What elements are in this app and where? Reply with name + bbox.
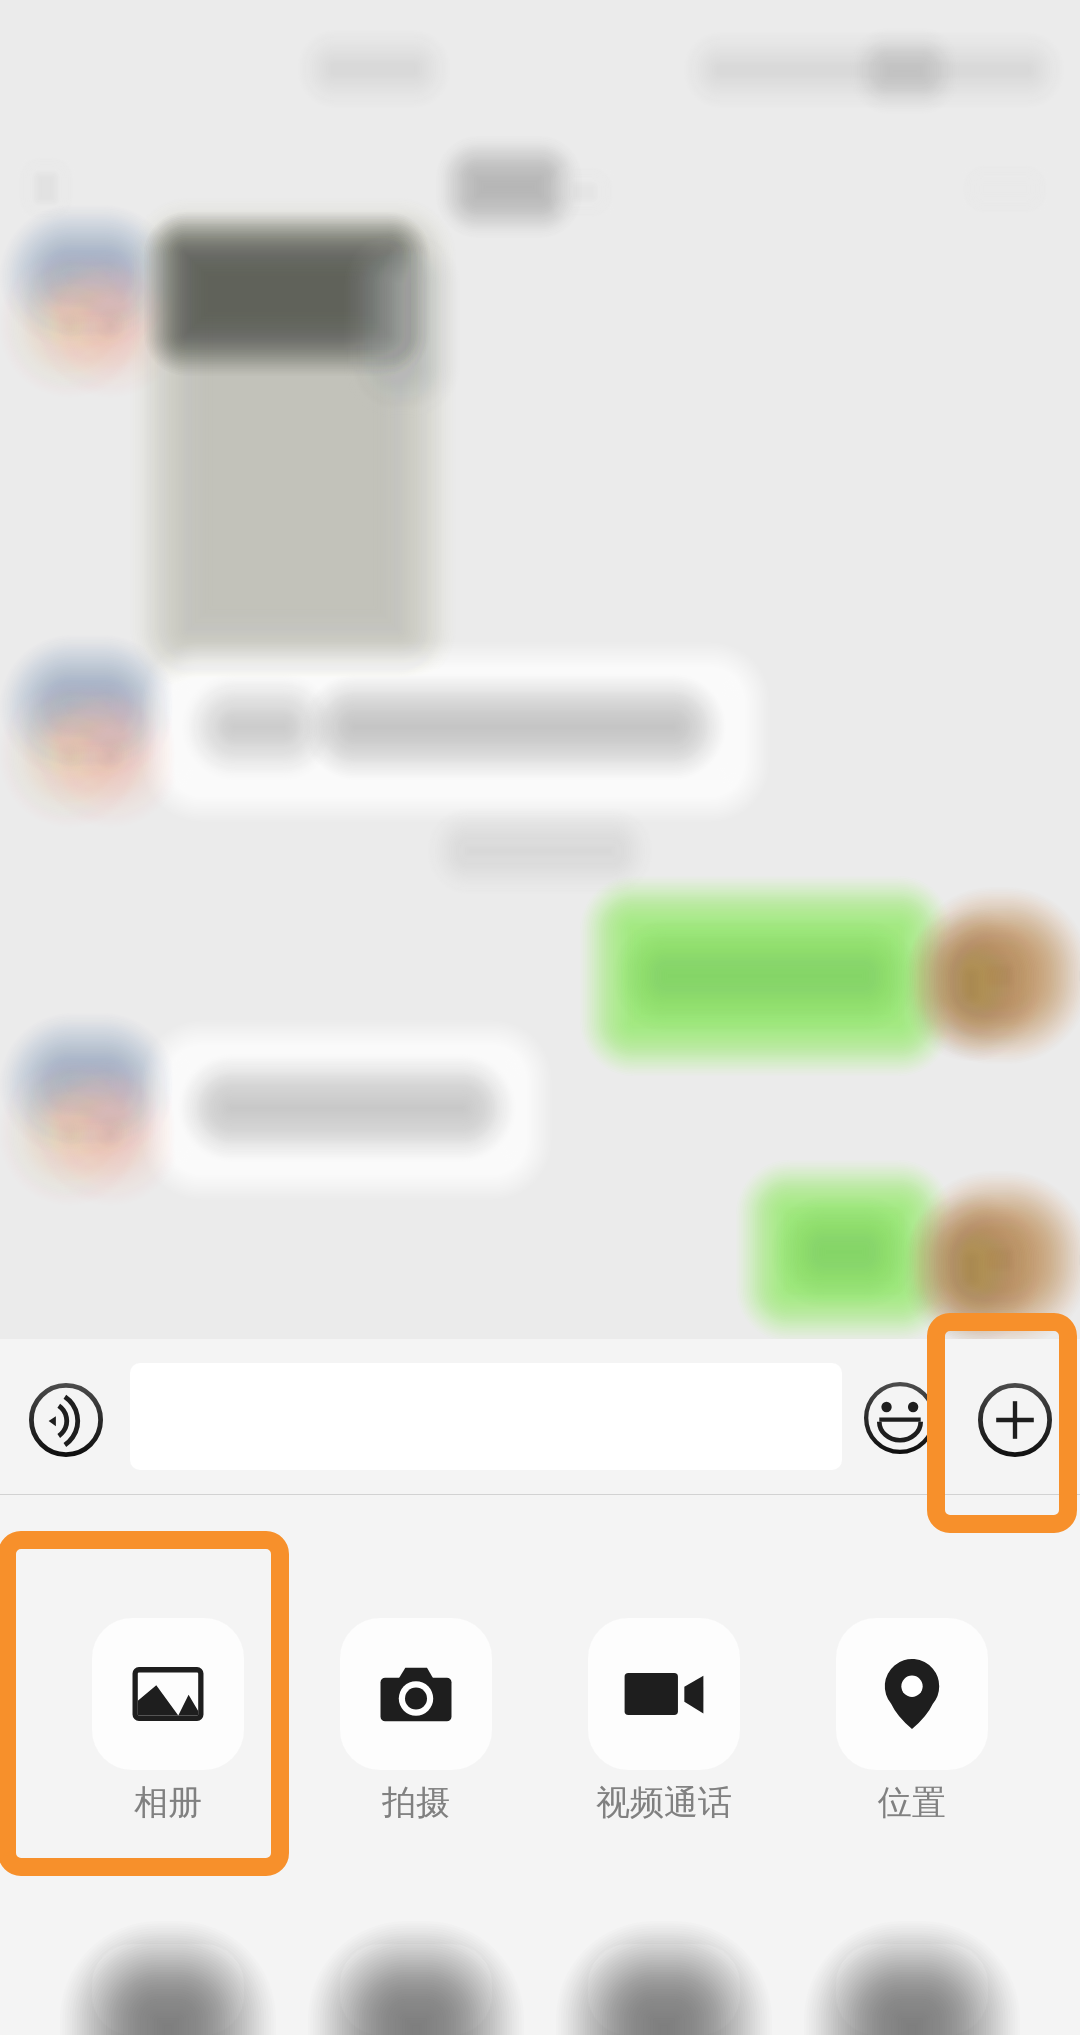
staticText: 拍摄 [382, 1781, 450, 1824]
button[interactable]: More options [969, 1374, 1061, 1466]
button[interactable]: Emoji [854, 1372, 946, 1464]
button[interactable]: 拍摄 [292, 1618, 540, 1824]
button[interactable]: 视频通话 [540, 1618, 788, 1824]
staticText: 相册 [134, 1781, 202, 1824]
button[interactable]: 位置 [788, 1618, 1036, 1824]
button[interactable]: 相册 [44, 1618, 292, 1824]
staticText: 视频通话 [596, 1781, 732, 1824]
button[interactable]: More action [92, 1944, 244, 2035]
button[interactable]: More action [588, 1944, 740, 2035]
button[interactable]: More action [836, 1944, 988, 2035]
staticText: 位置 [878, 1781, 946, 1824]
button[interactable]: More action [340, 1944, 492, 2035]
button[interactable]: Voice input [18, 1372, 114, 1468]
